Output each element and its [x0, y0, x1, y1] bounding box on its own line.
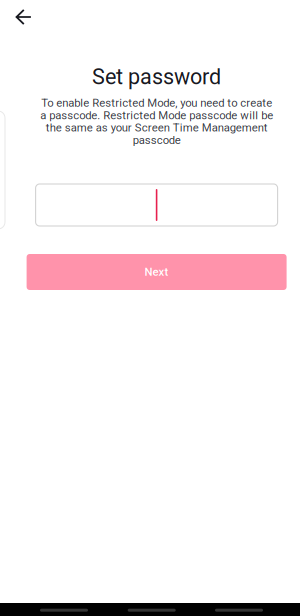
staticText: To enable Restricted Mode, you need to c…: [40, 96, 273, 147]
staticText: Next: [145, 265, 169, 279]
button[interactable]: System navigation: [34, 604, 94, 616]
staticText: Set password: [92, 64, 221, 89]
button[interactable]: Back: [5, 0, 43, 36]
button[interactable]: System navigation: [122, 604, 182, 616]
button[interactable]: Next: [27, 254, 287, 290]
button[interactable]: System navigation: [209, 604, 269, 616]
